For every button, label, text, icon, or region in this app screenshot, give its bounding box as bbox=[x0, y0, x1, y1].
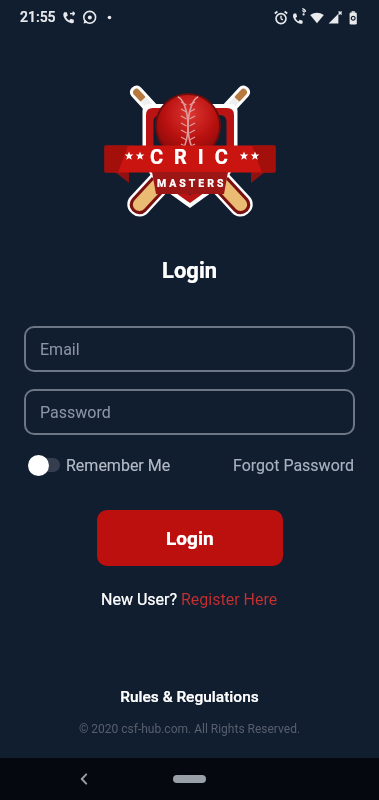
button[interactable]: Rules & Regulations bbox=[0, 688, 379, 706]
staticText: CRIC bbox=[150, 145, 239, 168]
button[interactable] bbox=[76, 771, 92, 787]
button[interactable]: Login bbox=[97, 510, 283, 566]
staticText: Password bbox=[40, 403, 111, 422]
staticText: Login bbox=[166, 527, 214, 549]
staticText: © 2020 csf-hub.com. All Rights Reserved. bbox=[0, 722, 379, 736]
button[interactable]: Email bbox=[24, 326, 355, 372]
staticText: 21:55 bbox=[20, 9, 56, 25]
button[interactable]: New User? bbox=[0, 590, 379, 609]
button[interactable] bbox=[173, 775, 206, 783]
staticText: MASTERS bbox=[157, 177, 227, 189]
button[interactable] bbox=[24, 453, 66, 477]
button[interactable]: Password bbox=[24, 389, 355, 435]
button[interactable]: Forgot Password bbox=[233, 456, 355, 475]
staticText: Login bbox=[0, 258, 379, 284]
staticText: Remember Me bbox=[66, 456, 171, 475]
staticText: Register Here bbox=[181, 590, 278, 609]
staticText: Email bbox=[40, 340, 80, 359]
staticText: New User? bbox=[101, 590, 181, 609]
